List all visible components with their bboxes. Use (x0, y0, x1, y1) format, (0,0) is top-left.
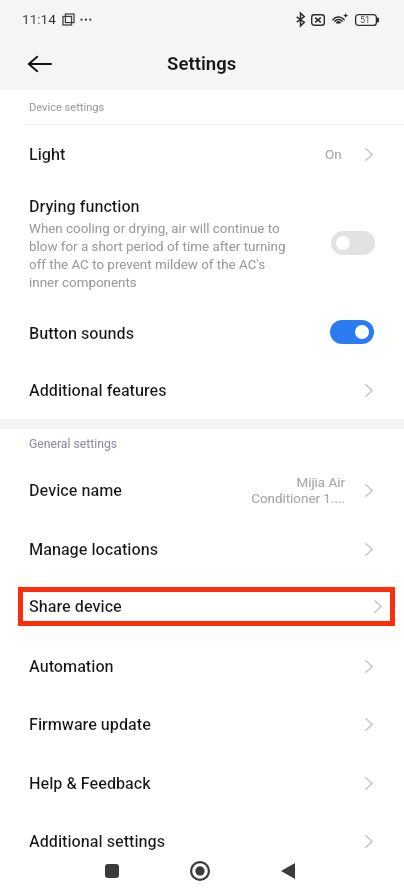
staticText: Firmware update (29, 715, 365, 734)
staticText: Mijia Air (296, 475, 345, 491)
button[interactable]: Toggle on (330, 320, 374, 344)
button[interactable]: Toggle off (331, 231, 375, 255)
staticText: Device name (29, 481, 251, 500)
button[interactable]: Device name (0, 461, 404, 520)
button[interactable]: Additional features (0, 362, 404, 419)
staticText: Settings (167, 53, 237, 75)
button[interactable]: Drying function (0, 184, 404, 304)
button[interactable]: Light (0, 125, 404, 184)
staticText: Manage locations (29, 540, 365, 559)
staticText: Device settings (29, 101, 105, 114)
button[interactable]: Additional settings (0, 812, 404, 871)
staticText: Additional settings (29, 832, 365, 851)
button[interactable]: Automation (0, 637, 404, 695)
button[interactable]: Help & Feedback (0, 754, 404, 812)
staticText: 11:14 (22, 11, 56, 27)
staticText: Button sounds (29, 324, 330, 343)
staticText: On (325, 147, 342, 163)
button[interactable]: Back (244, 851, 332, 891)
staticText: Help & Feedback (29, 774, 365, 793)
staticText: Additional features (29, 381, 365, 400)
staticText: Conditioner 1.... (251, 491, 345, 507)
button[interactable]: Home (156, 851, 244, 891)
staticText: Light (29, 145, 325, 164)
button[interactable]: Share device (18, 587, 395, 626)
staticText: Drying function (29, 197, 140, 216)
button[interactable]: Button sounds (0, 304, 404, 362)
button[interactable]: Firmware update (0, 695, 404, 754)
button[interactable]: Back (17, 42, 61, 86)
button[interactable]: Recent apps (68, 851, 156, 891)
staticText: 51 (360, 15, 371, 26)
staticText: When cooling or drying, air will continu… (29, 221, 291, 291)
staticText: General settings (29, 437, 118, 451)
button[interactable]: Manage locations (0, 520, 404, 579)
staticText: Share device (29, 597, 374, 616)
staticText: Automation (29, 657, 365, 676)
